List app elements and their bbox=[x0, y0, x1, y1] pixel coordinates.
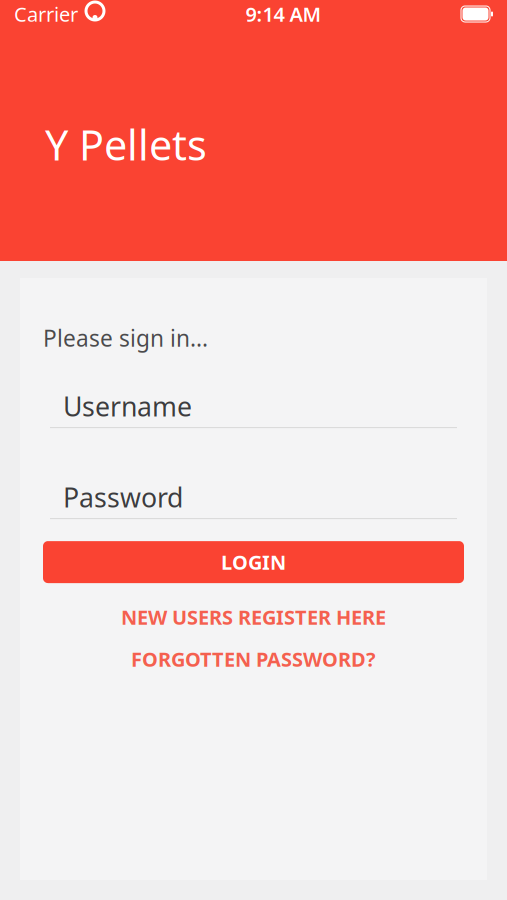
staticText: 9:14 AM bbox=[245, 1, 321, 27]
staticText: Username bbox=[63, 388, 192, 424]
button[interactable]: NEW USERS REGISTER HERE bbox=[43, 596, 464, 638]
button[interactable]: LOGIN bbox=[43, 541, 464, 583]
staticText: Y Pellets bbox=[45, 117, 207, 172]
staticText: Please sign in... bbox=[43, 323, 208, 353]
staticText: LOGIN bbox=[221, 549, 286, 575]
button[interactable]: FORGOTTEN PASSWORD? bbox=[43, 638, 464, 680]
staticText: NEW USERS REGISTER HERE bbox=[121, 604, 386, 630]
staticText: Password bbox=[63, 479, 183, 515]
staticText: FORGOTTEN PASSWORD? bbox=[131, 646, 376, 672]
staticText: Carrier bbox=[14, 1, 78, 27]
